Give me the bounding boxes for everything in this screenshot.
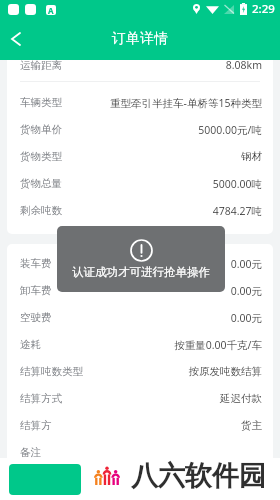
staticText: 运输距离 [20,59,62,72]
staticText: 货物单价 [20,123,62,136]
staticText: A [48,5,54,15]
staticText: 8.08km [68,58,262,72]
staticText: 车辆类型 [20,96,62,109]
staticText: 货主 [58,419,262,432]
staticText: 5000.00元/吨 [68,123,262,137]
button[interactable]: 结算方 [7,412,273,439]
staticText: 订单详情 [112,30,168,48]
staticText: 0.00元 [58,257,262,271]
button[interactable]: 剩余吨数 [7,197,273,224]
staticText: 装车费 [20,257,52,270]
staticText: 按原发吨数结算 [89,365,262,378]
staticText: 5000.00吨 [68,177,262,191]
button[interactable]: 车辆类型 [7,89,273,116]
staticText: 结算方 [20,419,52,432]
staticText: 空驶费 [20,311,52,324]
staticText: 结算吨数类型 [20,365,83,378]
button[interactable]: 空驶费 [7,304,273,331]
button[interactable]: 货物类型 [7,143,273,170]
button[interactable] [9,464,81,495]
staticText: 重型牵引半挂车-单桥等15种类型 [68,96,262,110]
button[interactable]: 货物单价 [7,116,273,143]
staticText: 2:29 [252,1,275,17]
staticText: 八六软件园 [131,459,266,493]
button[interactable]: 备注 [7,439,273,466]
button[interactable]: Back [0,23,32,55]
staticText: 货物类型 [20,150,62,163]
staticText: 卸车费 [20,284,52,297]
button[interactable]: 装车费 [7,250,273,277]
staticText: 认证成功才可进行抢单操作 [72,265,210,279]
button[interactable]: 运输距离 [7,49,273,81]
staticText: 0.00元 [58,311,262,325]
button[interactable]: 途耗 [7,331,273,358]
staticText: 延迟付款 [68,392,262,405]
staticText: 剩余吨数 [20,204,62,217]
staticText: 4784.27吨 [68,204,262,218]
button[interactable]: 结算方式 [7,385,273,412]
staticText: 0.00元 [58,284,262,298]
staticText: 结算方式 [20,392,62,405]
staticText: 钢材 [68,150,262,163]
button[interactable]: 结算吨数类型 [7,358,273,385]
button[interactable]: 货物总量 [7,170,273,197]
button[interactable]: 卸车费 [7,277,273,304]
staticText: 备注 [20,446,41,459]
staticText: 途耗 [20,338,41,351]
staticText: 按重量0.00千克/车 [47,338,262,352]
staticText: 货物总量 [20,177,62,190]
